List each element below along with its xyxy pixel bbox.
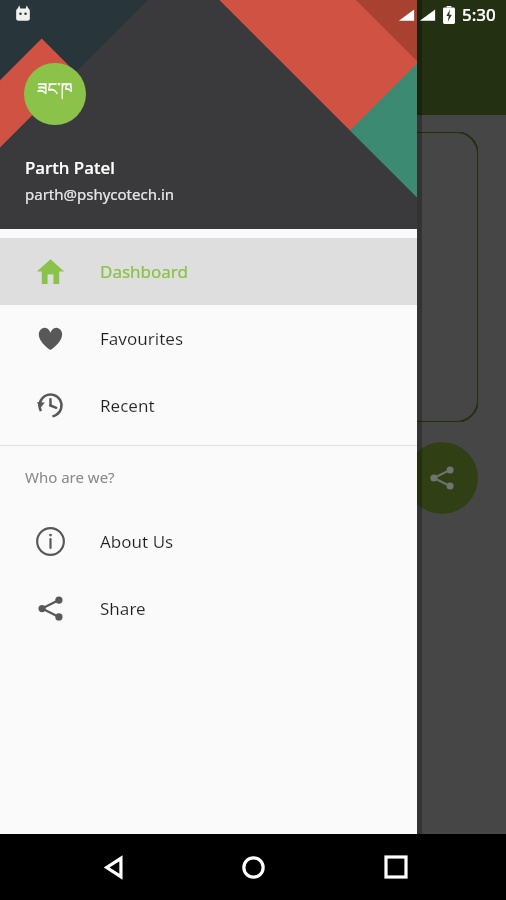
button[interactable]: Share bbox=[0, 575, 417, 642]
button[interactable]: Recent apps bbox=[376, 847, 416, 887]
staticText: parth@pshycotech.in bbox=[25, 184, 175, 204]
staticText: 5:30 bbox=[462, 3, 496, 26]
button[interactable]: Back bbox=[94, 847, 134, 887]
staticText: About Us bbox=[100, 530, 174, 553]
button[interactable]: Profile picture bbox=[24, 63, 86, 125]
staticText: Share bbox=[100, 597, 146, 620]
button[interactable]: About Us bbox=[0, 508, 417, 575]
staticText: Favourites bbox=[100, 327, 184, 350]
button[interactable]: Favourites bbox=[0, 305, 417, 372]
staticText: Dashboard bbox=[100, 260, 189, 283]
button[interactable]: Recent bbox=[0, 372, 417, 439]
staticText: Recent bbox=[100, 394, 155, 417]
staticText: ཟང་ཁ bbox=[37, 70, 73, 118]
staticText: Parth Patel bbox=[25, 156, 115, 179]
button[interactable]: Home bbox=[233, 847, 273, 887]
button[interactable]: Share bbox=[406, 442, 478, 514]
button[interactable]: Dashboard bbox=[0, 238, 417, 305]
staticText: Who are we? bbox=[25, 467, 115, 487]
